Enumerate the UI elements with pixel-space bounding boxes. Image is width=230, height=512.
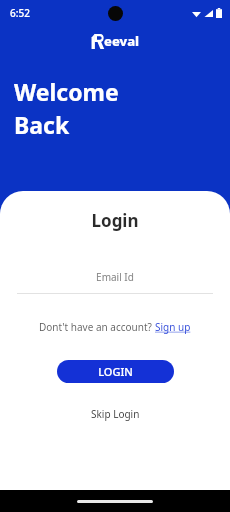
button[interactable]: Sign up — [155, 320, 191, 334]
button[interactable]: Skip Login — [91, 407, 140, 421]
staticText: Welcome — [14, 76, 119, 107]
staticText: Login — [91, 209, 139, 232]
staticText: Email Id — [96, 270, 134, 284]
staticText: eeval — [104, 32, 140, 50]
staticText: Sign up — [155, 320, 191, 334]
staticText: LOGIN — [98, 364, 133, 379]
button[interactable]: Email Id — [17, 270, 213, 294]
staticText: Dont't have an account? — [39, 320, 155, 334]
button[interactable]: LOGIN — [57, 360, 174, 383]
other: Home gesture bar — [77, 500, 153, 503]
staticText: 6:52 — [10, 6, 30, 20]
staticText: Back — [14, 109, 70, 140]
staticText: Skip Login — [91, 407, 140, 421]
